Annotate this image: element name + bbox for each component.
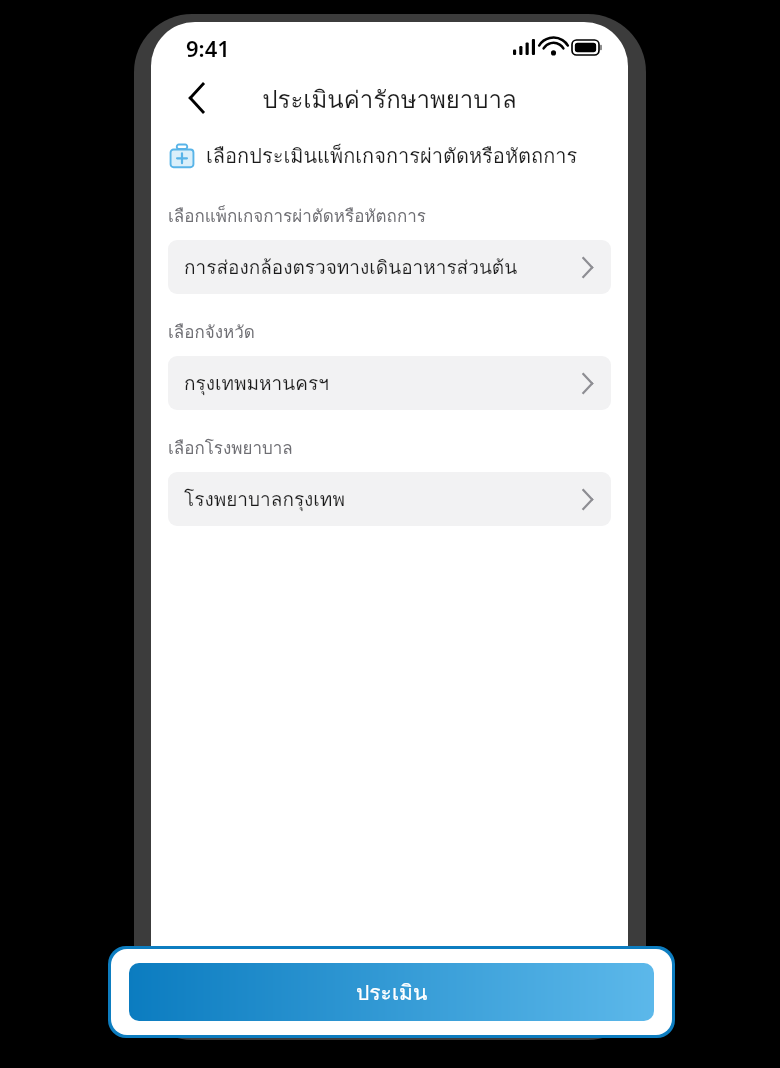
button[interactable]: โรงพยาบาลกรุงเทพ xyxy=(168,472,611,526)
staticText: โรงพยาบาลกรุงเทพ xyxy=(184,484,345,514)
staticText: เลือกจังหวัด xyxy=(168,318,255,345)
staticText: 9:41 xyxy=(186,33,230,63)
staticText: เลือกแพ็กเกจการผ่าตัดหรือหัตถการ xyxy=(168,202,426,229)
button[interactable]: ประเมิน xyxy=(129,963,654,1021)
staticText: เลือกประเมินแพ็กเกจการผ่าตัดหรือหัตถการ xyxy=(206,140,578,172)
staticText: ประเมิน xyxy=(356,976,428,1009)
button[interactable]: การส่องกล้องตรวจทางเดินอาหารส่วนต้น xyxy=(168,240,611,294)
staticText: กรุงเทพมหานครฯ xyxy=(184,368,329,398)
button[interactable]: Back xyxy=(173,74,221,122)
staticText: ประเมินค่ารักษาพยาบาล xyxy=(262,80,517,118)
staticText: เลือกโรงพยาบาล xyxy=(168,434,293,461)
button[interactable]: กรุงเทพมหานครฯ xyxy=(168,356,611,410)
staticText: การส่องกล้องตรวจทางเดินอาหารส่วนต้น xyxy=(184,252,518,282)
